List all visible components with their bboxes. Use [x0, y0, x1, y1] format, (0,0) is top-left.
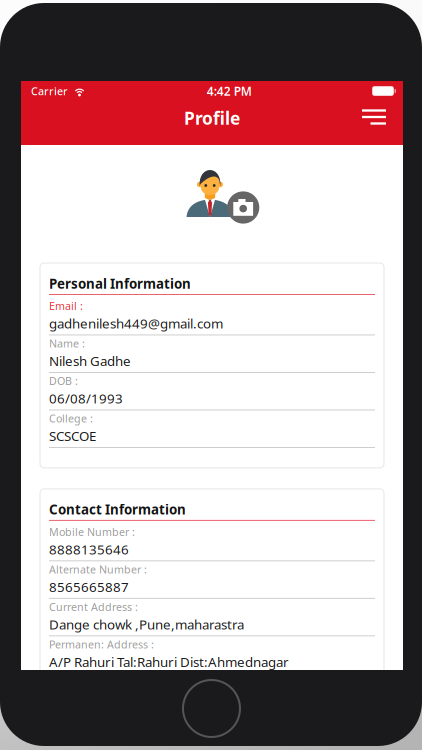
- staticText: 8565665887: [49, 578, 129, 596]
- staticText: 06/08/1993: [49, 389, 123, 407]
- staticText: Current Address :: [49, 600, 138, 614]
- staticText: 8888135646: [49, 540, 129, 558]
- staticText: Nilesh Gadhe: [49, 352, 131, 370]
- staticText: Profile: [184, 106, 240, 129]
- staticText: SCSCOE: [49, 427, 96, 445]
- staticText: College :: [49, 411, 93, 425]
- staticText: gadhenilesh449@gmail.com: [49, 314, 223, 332]
- staticText: Mobile Number :: [49, 525, 135, 539]
- staticText: Alternate Number :: [49, 562, 147, 576]
- staticText: 4:42 PM: [207, 83, 252, 99]
- staticText: Personal Information: [49, 275, 191, 292]
- staticText: Carrier: [31, 84, 68, 98]
- staticText: A/P Rahuri Tal:Rahuri Dist:Ahmednagar: [49, 653, 289, 671]
- staticText: Email :: [49, 299, 83, 313]
- staticText: Contact Information: [49, 500, 186, 518]
- staticText: Name :: [49, 336, 85, 350]
- button[interactable]: Menu: [348, 105, 403, 141]
- staticText: DOB :: [49, 374, 78, 388]
- staticText: Dange chowk ,Pune,maharastra: [49, 615, 244, 633]
- staticText: Permanen: Address :: [49, 637, 154, 651]
- button[interactable]: Change profile photo: [186, 164, 260, 224]
